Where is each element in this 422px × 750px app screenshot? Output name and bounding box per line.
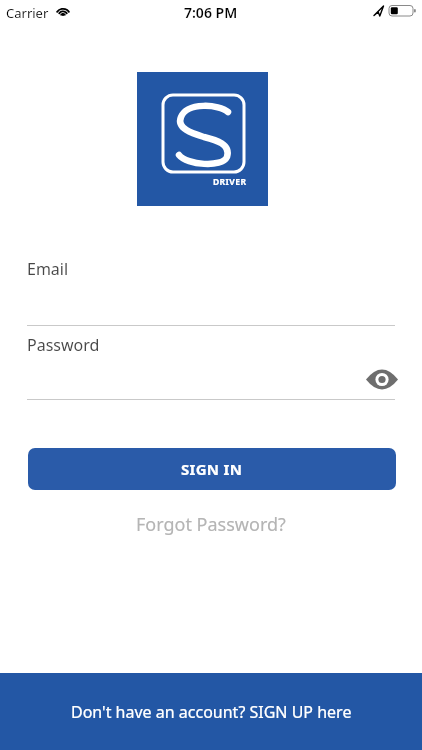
button[interactable]	[360, 362, 404, 396]
staticText: Forgot Password?	[136, 512, 286, 537]
staticText: Don't have an account? SIGN UP here	[71, 701, 352, 723]
staticText: DRIVER	[213, 176, 247, 188]
button[interactable]: SIGN IN	[28, 448, 396, 490]
staticText: Password	[27, 334, 100, 356]
button[interactable]: Password	[27, 331, 395, 400]
button[interactable]: Don't have an account? SIGN UP here	[0, 673, 422, 750]
button[interactable]: Email	[27, 255, 395, 326]
staticText: SIGN IN	[181, 459, 243, 479]
staticText: Email	[27, 258, 69, 280]
button[interactable]: Forgot Password?	[136, 512, 286, 537]
staticText: 7:06 PM	[184, 3, 238, 22]
staticText: Carrier	[6, 4, 49, 22]
